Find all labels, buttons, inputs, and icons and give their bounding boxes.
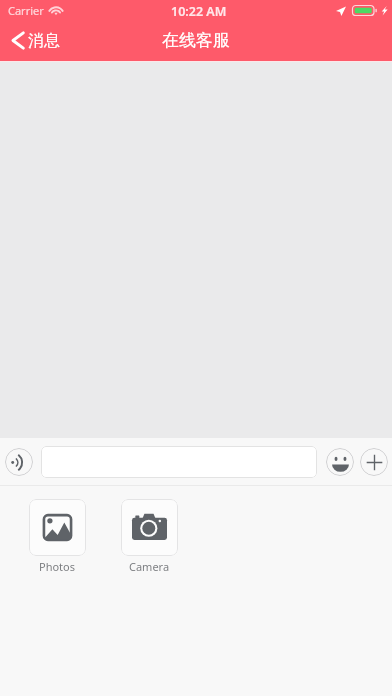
staticText: Carrier: [8, 3, 44, 18]
staticText: 消息: [28, 31, 60, 51]
button[interactable]: 消息: [0, 27, 70, 55]
button[interactable]: Camera: [121, 499, 178, 574]
staticText: 在线客服: [162, 30, 230, 51]
staticText: Photos: [39, 559, 76, 574]
button[interactable]: More options: [360, 448, 388, 476]
button[interactable]: Voice message: [5, 448, 33, 476]
staticText: 10:22 AM: [171, 3, 227, 20]
button[interactable]: Emoji: [326, 448, 354, 476]
button[interactable]: [41, 446, 317, 478]
staticText: Camera: [129, 559, 170, 574]
button[interactable]: Photos: [29, 499, 86, 574]
